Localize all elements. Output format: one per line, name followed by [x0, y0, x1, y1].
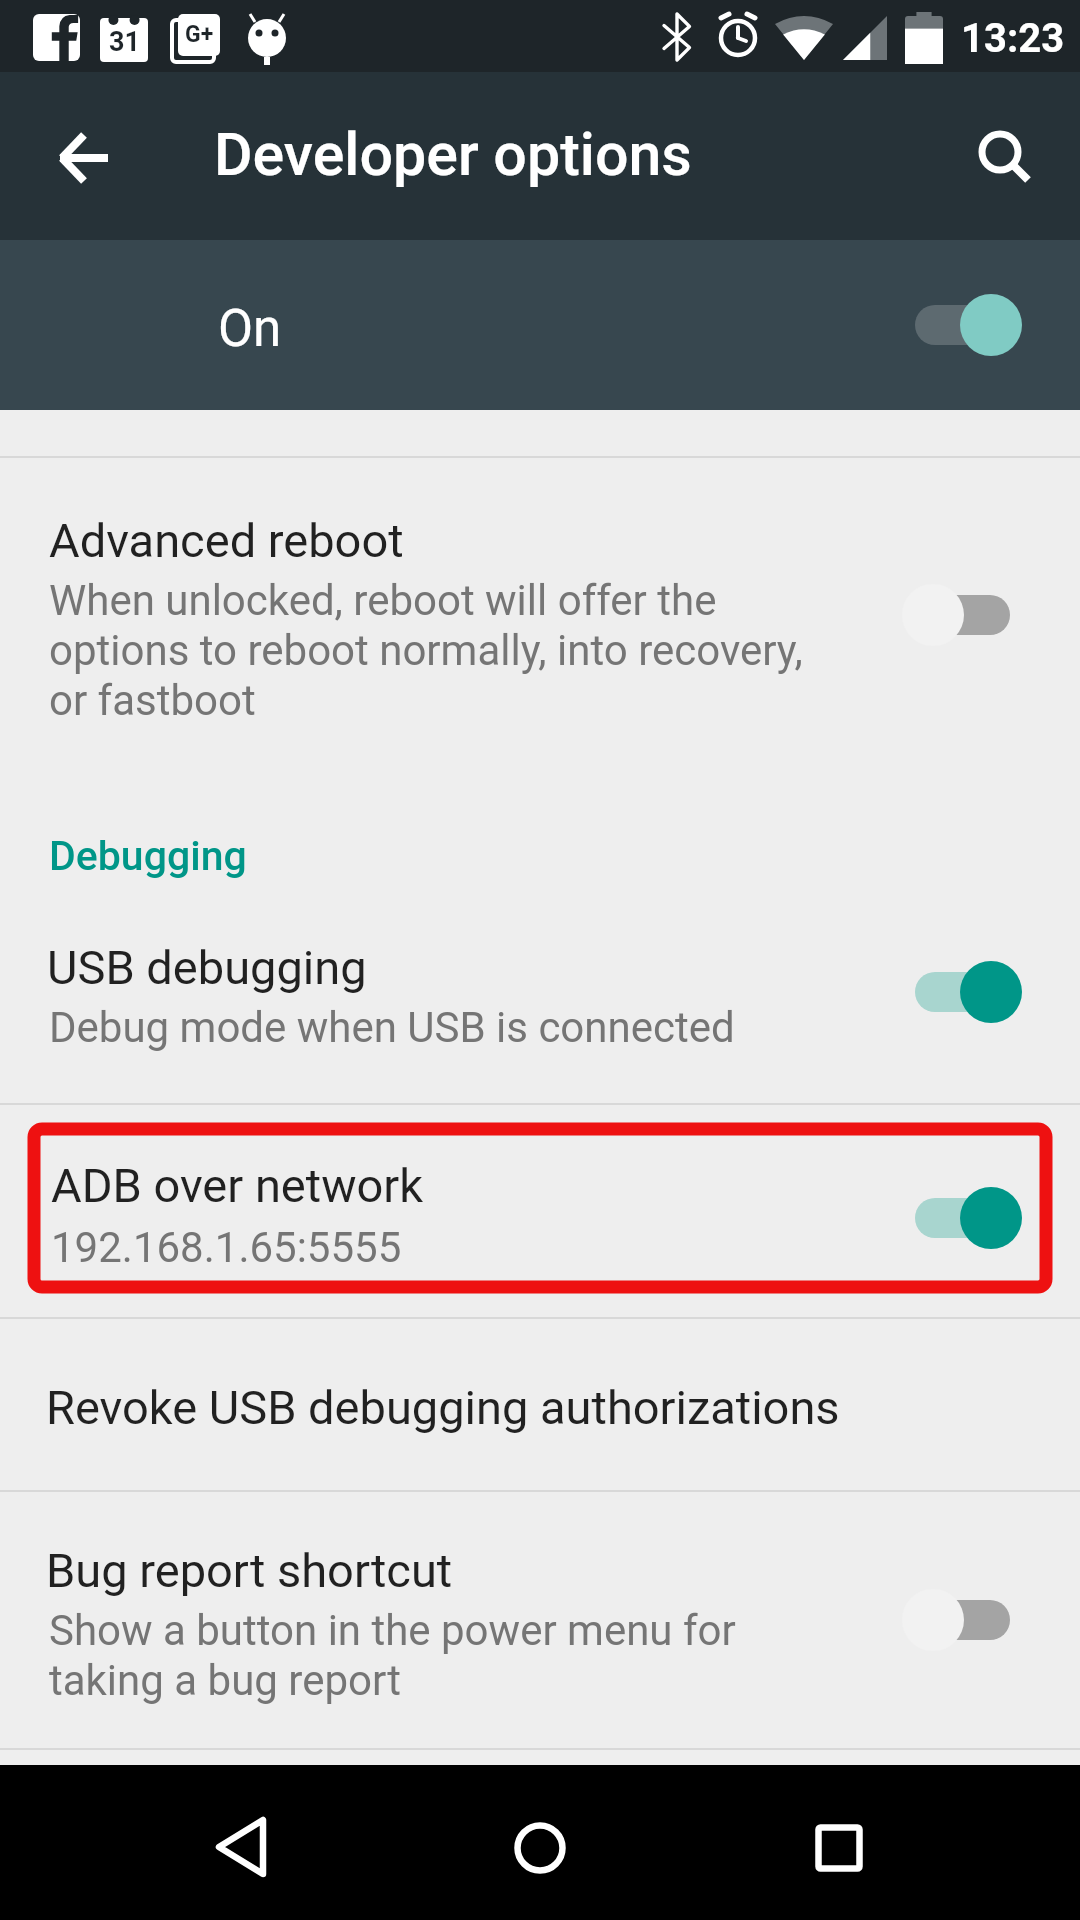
staticText: ADB over network — [51, 1158, 424, 1213]
staticText: Show a button in the power menu for taki… — [49, 1606, 736, 1705]
button[interactable] — [0, 470, 1080, 790]
staticText: Revoke USB debugging authorizations — [46, 1380, 840, 1435]
button[interactable] — [902, 584, 1022, 646]
button[interactable] — [902, 961, 1022, 1023]
button[interactable] — [978, 130, 1034, 186]
staticText: USB debugging — [47, 940, 367, 995]
staticText: Advanced reboot — [49, 513, 404, 568]
staticText: Bug report shortcut — [46, 1543, 453, 1598]
staticText: Developer options — [214, 120, 692, 189]
button[interactable] — [902, 1589, 1022, 1651]
button[interactable] — [0, 1319, 1080, 1489]
staticText: On — [218, 299, 282, 359]
button[interactable] — [902, 1187, 1022, 1249]
button[interactable] — [815, 1824, 863, 1872]
button[interactable] — [58, 132, 110, 184]
button[interactable] — [216, 1816, 266, 1878]
staticText: Debugging — [49, 832, 247, 880]
staticText: Debug mode when USB is connected — [49, 1003, 735, 1052]
button[interactable]: On — [0, 240, 1080, 410]
staticText: When unlocked, reboot will offer the opt… — [49, 576, 803, 725]
staticText: 13:23 — [961, 15, 1065, 62]
staticText: G+ — [185, 21, 214, 48]
button[interactable] — [514, 1822, 566, 1874]
staticText: 31 — [109, 26, 140, 58]
staticText: 192.168.1.65:5555 — [51, 1223, 402, 1272]
button[interactable] — [902, 294, 1022, 356]
